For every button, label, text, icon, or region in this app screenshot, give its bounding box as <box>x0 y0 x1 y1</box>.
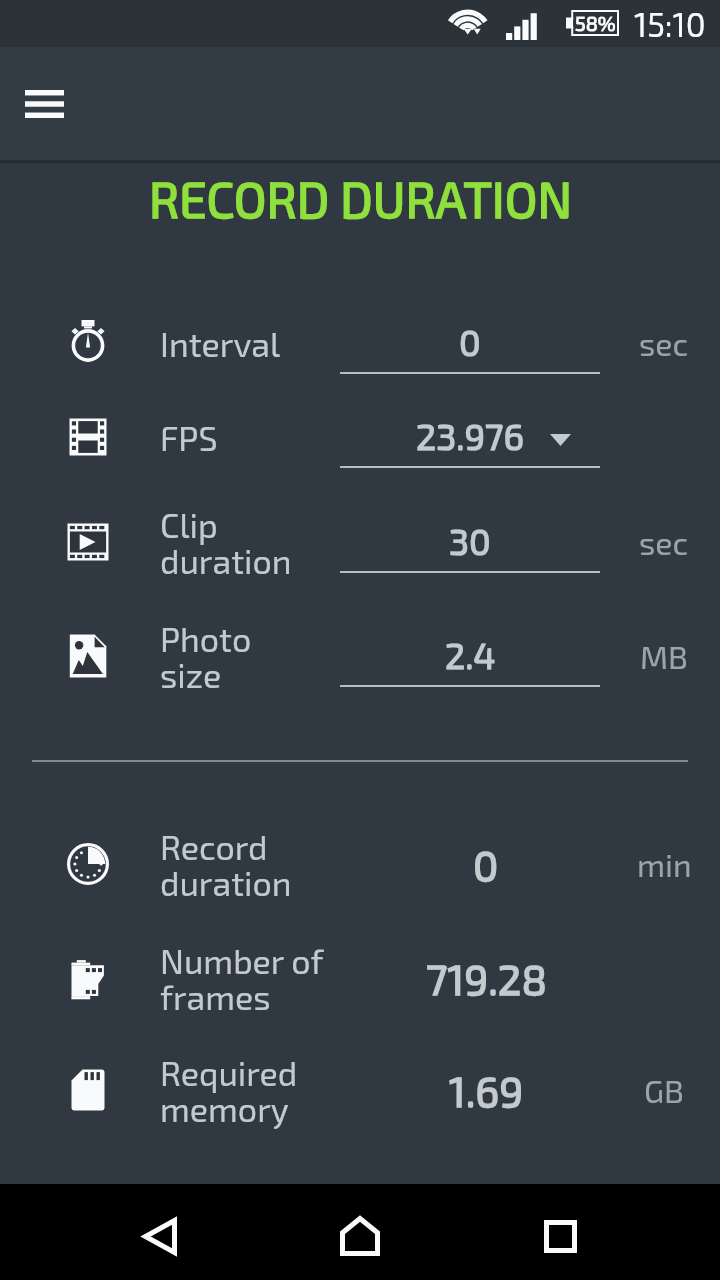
staticText: MB <box>640 637 688 675</box>
staticText: Number of frames <box>160 940 324 1017</box>
staticText: 1.69 <box>449 1065 524 1115</box>
button[interactable]: FPS <box>0 387 720 487</box>
staticText: 15:10 <box>634 4 706 44</box>
staticText: sec <box>639 523 689 561</box>
button[interactable]: Back <box>120 1196 200 1276</box>
button[interactable]: Recent apps <box>520 1196 600 1276</box>
staticText: RECORD DURATION <box>149 169 572 228</box>
button[interactable]: Photo size <box>0 606 720 706</box>
staticText: Photo size <box>160 618 252 695</box>
button[interactable]: Clip duration <box>0 492 720 592</box>
staticText: 58% <box>575 11 616 35</box>
staticText: Clip duration <box>160 504 292 581</box>
staticText: sec <box>639 324 689 362</box>
button[interactable]: Interval <box>0 293 720 393</box>
staticText: 719.28 <box>426 953 547 1003</box>
staticText: 30 <box>449 519 491 562</box>
staticText: Interval <box>160 323 281 364</box>
staticText: 0 <box>473 839 499 889</box>
staticText: Required memory <box>160 1052 298 1129</box>
staticText: 2.4 <box>445 633 496 676</box>
button[interactable]: Open navigation menu <box>12 72 76 136</box>
staticText: Record duration <box>160 826 292 903</box>
staticText: GB <box>644 1071 684 1109</box>
staticText: 0 <box>459 320 481 363</box>
staticText: min <box>637 845 692 883</box>
button[interactable]: Home <box>320 1196 400 1276</box>
staticText: FPS <box>160 417 218 458</box>
staticText: 23.976 <box>416 414 525 457</box>
